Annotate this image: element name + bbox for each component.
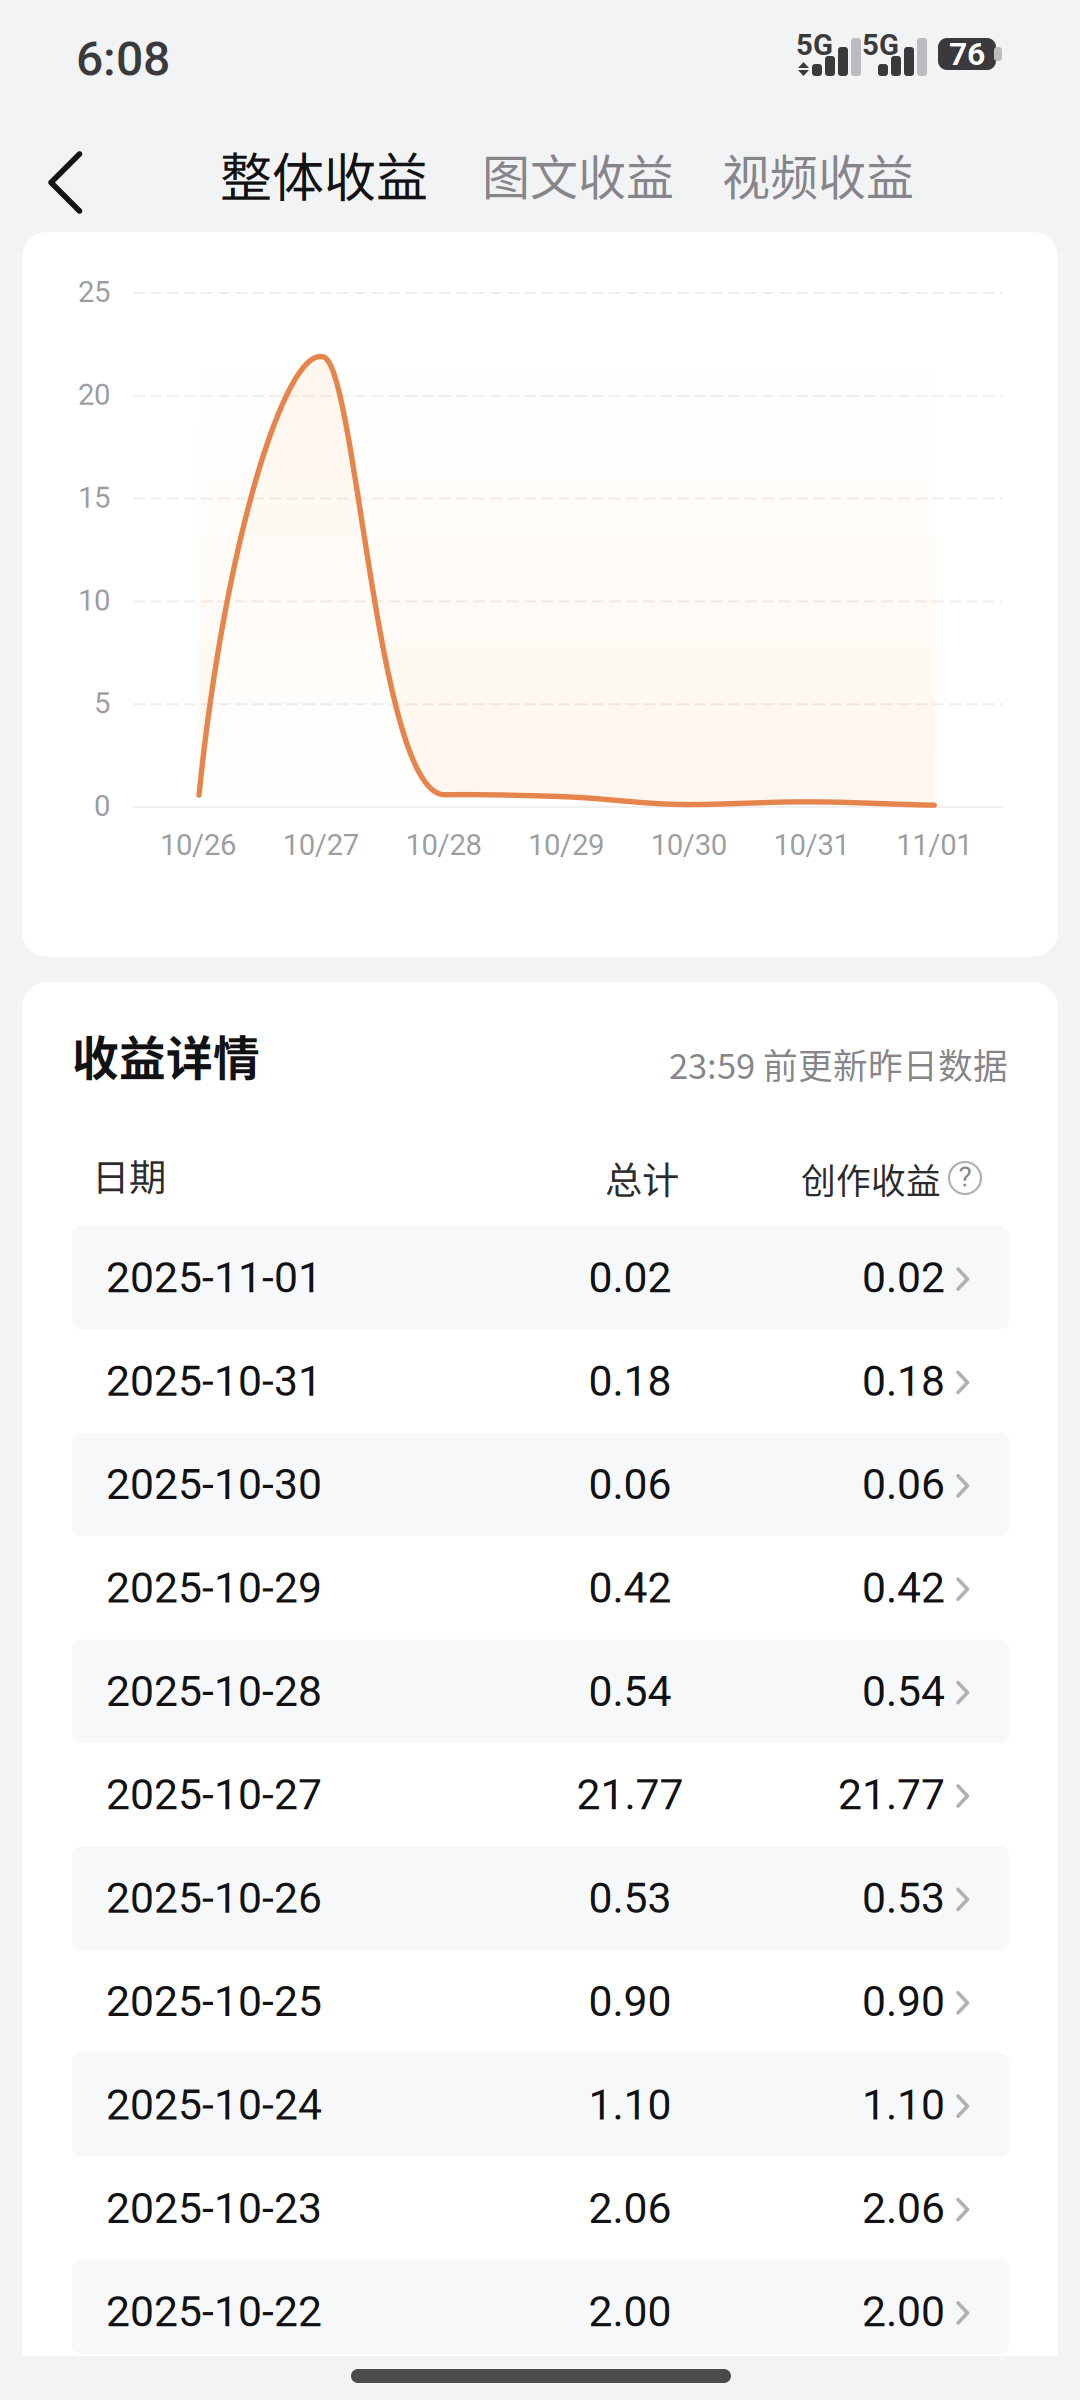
staticText: 1.10 [588, 2080, 671, 2130]
staticText: 日期 [92, 1148, 166, 1202]
staticText: 15 [78, 480, 110, 515]
staticText: 2025-10-23 [106, 2183, 322, 2233]
staticText: 视频收益 [722, 139, 914, 209]
staticText: 收益详情 [72, 1021, 260, 1089]
button[interactable]: 2025-10-24 [72, 2053, 1009, 2157]
staticText: 0.54 [588, 1666, 671, 1716]
staticText: 0.06 [588, 1459, 671, 1509]
staticText: 0.06 [862, 1459, 945, 1509]
button[interactable]: 2025-10-25 [72, 1950, 1009, 2053]
staticText: 5 [94, 686, 110, 720]
staticText: 0.42 [588, 1563, 671, 1613]
staticText: 2025-10-26 [106, 1873, 322, 1923]
staticText: 5G [862, 28, 899, 62]
button[interactable]: 2025-10-23 [72, 2157, 1009, 2260]
staticText: 10 [78, 583, 110, 618]
button[interactable]: 2025-10-22 [72, 2260, 1009, 2354]
staticText: 2025-10-31 [106, 1356, 322, 1406]
staticText: 0.54 [862, 1666, 945, 1716]
button[interactable]: 视频收益 [720, 116, 916, 232]
staticText: 0.02 [588, 1253, 671, 1303]
staticText: 0.53 [862, 1873, 945, 1923]
staticText: 2025-11-01 [106, 1253, 322, 1303]
staticText: 0.18 [588, 1356, 671, 1406]
staticText: 10/29 [528, 828, 604, 862]
button[interactable]: 2025-10-26 [72, 1846, 1009, 1950]
staticText: 2025-10-30 [106, 1459, 322, 1509]
staticText: ? [958, 1161, 971, 1193]
staticText: 0.90 [862, 1976, 945, 2026]
staticText: 2025-10-28 [106, 1666, 322, 1716]
staticText: 10/30 [651, 828, 727, 862]
button[interactable]: 2025-10-31 [72, 1329, 1009, 1433]
staticText: 0.90 [588, 1976, 671, 2026]
staticText: 0.53 [588, 1873, 671, 1923]
staticText: 10/27 [283, 828, 359, 862]
staticText: 23:59 前更新昨日数据 [669, 1039, 1008, 1089]
staticText: 20 [78, 378, 110, 412]
staticText: 0.02 [862, 1253, 945, 1303]
staticText: 10/26 [160, 828, 236, 862]
button[interactable]: 2025-10-27 [72, 1743, 1009, 1846]
staticText: 2.06 [862, 2183, 945, 2233]
staticText: 5G [796, 28, 833, 62]
button[interactable]: 2025-11-01 [72, 1226, 1009, 1329]
staticText: 0.18 [862, 1356, 945, 1406]
staticText: 0 [94, 789, 110, 823]
staticText: 2025-10-22 [106, 2287, 322, 2337]
staticText: 图文收益 [482, 139, 674, 209]
staticText: 6:08 [76, 31, 170, 87]
button[interactable]: 整体收益 [218, 116, 430, 232]
staticText: 21.77 [576, 1770, 683, 1820]
staticText: 2025-10-24 [106, 2080, 322, 2130]
staticText: 2.00 [862, 2287, 945, 2337]
staticText: 11/01 [896, 828, 972, 862]
staticText: 21.77 [838, 1770, 945, 1820]
staticText: 0.42 [862, 1563, 945, 1613]
staticText: 创作收益 [801, 1154, 941, 1204]
staticText: 总计 [605, 1151, 679, 1205]
staticText: 10/28 [405, 828, 481, 862]
button[interactable]: 2025-10-30 [72, 1433, 1009, 1536]
staticText: 2025-10-29 [106, 1563, 322, 1613]
button[interactable]: Back [0, 116, 126, 232]
button[interactable]: 2025-10-28 [72, 1640, 1009, 1743]
staticText: 2.06 [588, 2183, 671, 2233]
staticText: 2.00 [588, 2287, 671, 2337]
staticText: 2025-10-25 [106, 1976, 322, 2026]
staticText: 整体收益 [220, 136, 428, 212]
staticText: 1.10 [862, 2080, 945, 2130]
button[interactable]: 图文收益 [480, 116, 676, 232]
staticText: 10/31 [773, 828, 849, 862]
staticText: 2025-10-27 [106, 1770, 322, 1820]
button[interactable]: 2025-10-29 [72, 1536, 1009, 1640]
staticText: 76 [949, 35, 985, 73]
staticText: 25 [78, 275, 110, 309]
